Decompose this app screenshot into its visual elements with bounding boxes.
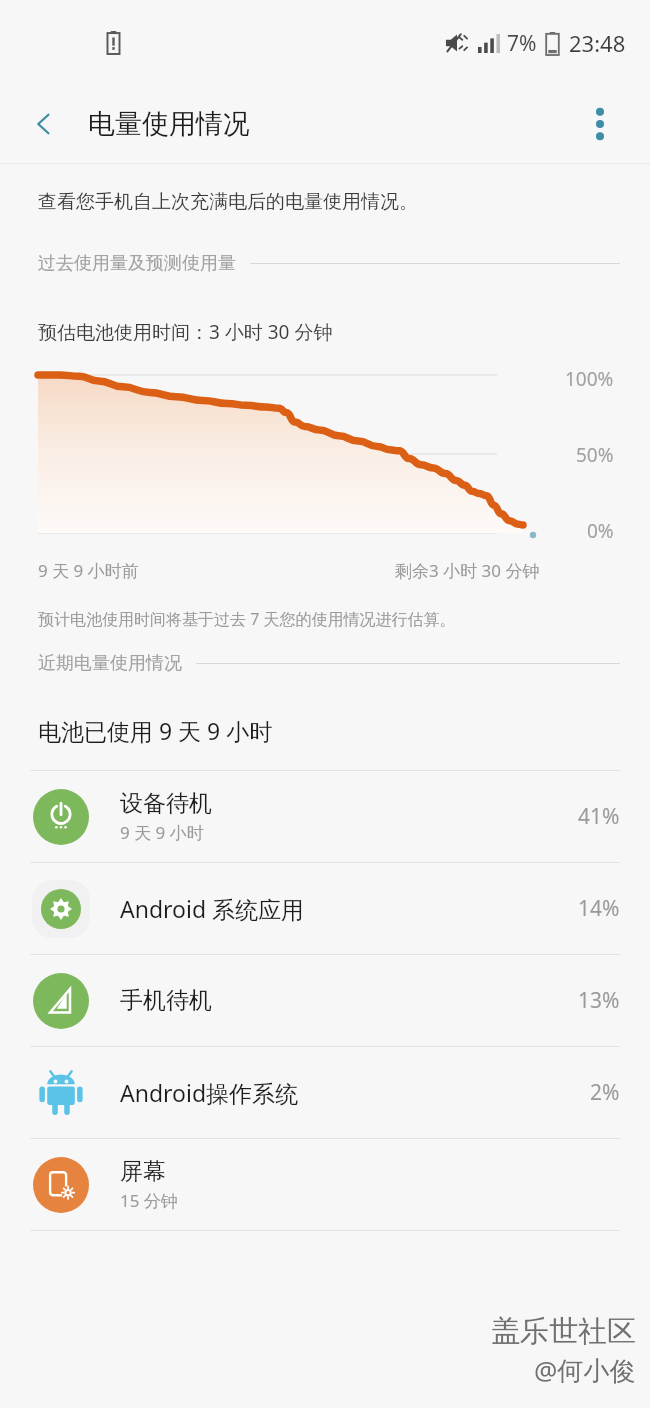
staticText: 设备待机 <box>120 789 212 818</box>
staticText: 50% <box>576 442 614 468</box>
button[interactable]: Android操作系统 <box>0 1047 650 1138</box>
button[interactable]: 设备待机 <box>0 771 650 862</box>
staticText: 14% <box>578 894 620 923</box>
staticText: 100% <box>565 366 614 392</box>
button[interactable]: More options <box>572 96 628 152</box>
button[interactable]: 手机待机 <box>0 955 650 1046</box>
staticText: 手机待机 <box>120 986 212 1015</box>
staticText: 过去使用量及预测使用量 <box>38 252 236 275</box>
staticText: 电量使用情况 <box>88 107 250 141</box>
staticText: 7% <box>507 29 537 58</box>
button[interactable]: 屏幕 <box>0 1139 650 1230</box>
staticText: 13% <box>578 986 620 1015</box>
staticText: 盖乐世社区 <box>491 1313 636 1350</box>
staticText: 屏幕 <box>120 1157 166 1186</box>
button[interactable]: Android 系统应用 <box>0 863 650 954</box>
button[interactable]: Back <box>16 96 72 152</box>
staticText: 预计电池使用时间将基于过去 7 天您的使用情况进行估算。 <box>38 608 456 630</box>
staticText: 查看您手机自上次充满电后的电量使用情况。 <box>38 190 418 214</box>
staticText: 0% <box>587 518 614 544</box>
staticText: 15 分钟 <box>120 1189 178 1212</box>
staticText: 9 天 9 小时前 <box>38 559 139 582</box>
staticText: 23:48 <box>569 28 626 58</box>
staticText: 41% <box>578 802 620 831</box>
staticText: Android 系统应用 <box>120 893 305 924</box>
staticText: Android操作系统 <box>120 1077 299 1108</box>
staticText: 预估电池使用时间：3 小时 30 分钟 <box>38 319 333 345</box>
staticText: 2% <box>590 1078 620 1107</box>
staticText: 9 天 9 小时 <box>120 821 204 844</box>
staticText: 剩余3 小时 30 分钟 <box>395 559 540 582</box>
staticText: 近期电量使用情况 <box>38 652 182 675</box>
staticText: 电池已使用 9 天 9 小时 <box>38 715 273 746</box>
staticText: @何小俊 <box>534 1352 636 1388</box>
